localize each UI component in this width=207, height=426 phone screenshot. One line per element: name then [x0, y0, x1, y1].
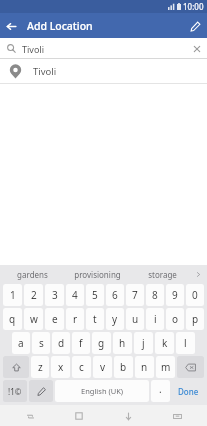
- staticText: s: [39, 336, 44, 350]
- staticText: Tivoli: [33, 65, 57, 78]
- staticText: provisioning: [74, 269, 121, 280]
- button[interactable]: 8: [146, 284, 164, 306]
- staticText: 9: [172, 288, 178, 302]
- button[interactable]: Symbols: [3, 380, 27, 402]
- button[interactable]: 3: [45, 284, 64, 306]
- button[interactable]: y: [106, 308, 124, 330]
- staticText: 1: [10, 288, 16, 302]
- button[interactable]: k: [155, 332, 174, 354]
- button[interactable]: .: [151, 380, 170, 402]
- staticText: 6: [112, 288, 118, 302]
- button[interactable]: Handwriting: [29, 380, 53, 402]
- staticText: t: [93, 312, 97, 326]
- staticText: .: [159, 382, 162, 396]
- staticText: 7: [132, 288, 138, 302]
- staticText: 4: [72, 288, 78, 302]
- button[interactable]: English (UK): [55, 380, 149, 402]
- staticText: 10:00: [183, 1, 204, 12]
- button[interactable]: 2: [24, 284, 43, 306]
- button[interactable]: n: [135, 356, 154, 378]
- staticText: u: [132, 312, 139, 326]
- button[interactable]: 7: [126, 284, 144, 306]
- staticText: g: [98, 336, 105, 350]
- button[interactable]: 9: [166, 284, 184, 306]
- staticText: o: [172, 312, 179, 326]
- button[interactable]: 0: [186, 284, 204, 306]
- button[interactable]: c: [72, 356, 91, 378]
- button[interactable]: Hide keyboard: [166, 406, 188, 426]
- button[interactable]: b: [114, 356, 133, 378]
- button[interactable]: g: [92, 332, 111, 354]
- button[interactable]: r: [66, 308, 84, 330]
- button[interactable]: Back: [117, 406, 139, 426]
- button[interactable]: a: [12, 332, 30, 354]
- button[interactable]: 6: [106, 284, 124, 306]
- button[interactable]: 1: [3, 284, 22, 306]
- button[interactable]: Shift: [3, 356, 29, 378]
- staticText: a: [18, 336, 24, 350]
- staticText: n: [141, 360, 148, 374]
- staticText: f: [79, 336, 83, 350]
- staticText: q: [9, 312, 16, 326]
- button[interactable]: o: [166, 308, 184, 330]
- button[interactable]: Clear: [187, 39, 207, 59]
- staticText: l: [184, 336, 187, 350]
- button[interactable]: p: [186, 308, 204, 330]
- staticText: d: [58, 336, 65, 350]
- staticText: j: [142, 336, 145, 350]
- staticText: 0: [192, 288, 198, 302]
- button[interactable]: w: [24, 308, 43, 330]
- button[interactable]: q: [3, 308, 22, 330]
- button[interactable]: 5: [86, 284, 104, 306]
- button[interactable]: m: [156, 356, 175, 378]
- staticText: gardens: [17, 269, 48, 280]
- staticText: y: [112, 312, 118, 326]
- staticText: c: [79, 360, 84, 374]
- staticText: x: [58, 360, 64, 374]
- staticText: 3: [52, 288, 58, 302]
- button[interactable]: storage: [130, 265, 195, 283]
- button[interactable]: provisioning: [65, 265, 130, 283]
- button[interactable]: x: [51, 356, 70, 378]
- staticText: 5: [92, 288, 98, 302]
- button[interactable]: Recents: [19, 406, 41, 426]
- button[interactable]: z: [31, 356, 49, 378]
- staticText: b: [120, 360, 127, 374]
- button[interactable]: u: [126, 308, 144, 330]
- staticText: p: [192, 312, 199, 326]
- staticText: storage: [148, 269, 177, 280]
- staticText: m: [161, 360, 171, 374]
- button[interactable]: t: [86, 308, 104, 330]
- button[interactable]: Edit: [183, 14, 207, 38]
- staticText: Tivoli: [22, 43, 44, 55]
- button[interactable]: Done: [172, 380, 204, 402]
- button[interactable]: i: [146, 308, 164, 330]
- button[interactable]: f: [72, 332, 90, 354]
- staticText: k: [162, 336, 168, 350]
- staticText: 2: [31, 288, 37, 302]
- staticText: r: [73, 312, 78, 326]
- button[interactable]: v: [93, 356, 112, 378]
- staticText: Add Location: [27, 19, 93, 33]
- button[interactable]: j: [134, 332, 153, 354]
- staticText: z: [38, 360, 43, 374]
- staticText: v: [100, 360, 106, 374]
- button[interactable]: Backspace: [177, 356, 204, 378]
- button[interactable]: s: [32, 332, 50, 354]
- button[interactable]: d: [52, 332, 70, 354]
- staticText: 8: [152, 288, 158, 302]
- button[interactable]: gardens: [0, 265, 65, 283]
- staticText: !1©: [8, 386, 22, 397]
- button[interactable]: 4: [66, 284, 84, 306]
- staticText: i: [154, 312, 157, 326]
- button[interactable]: Tivoli: [0, 59, 207, 84]
- button[interactable]: l: [176, 332, 195, 354]
- staticText: h: [119, 336, 126, 350]
- staticText: e: [52, 312, 58, 326]
- button[interactable]: Back: [0, 15, 22, 37]
- button[interactable]: Home: [68, 406, 90, 426]
- staticText: English (UK): [81, 386, 124, 396]
- button[interactable]: h: [113, 332, 132, 354]
- staticText: Done: [178, 386, 199, 397]
- button[interactable]: e: [45, 308, 64, 330]
